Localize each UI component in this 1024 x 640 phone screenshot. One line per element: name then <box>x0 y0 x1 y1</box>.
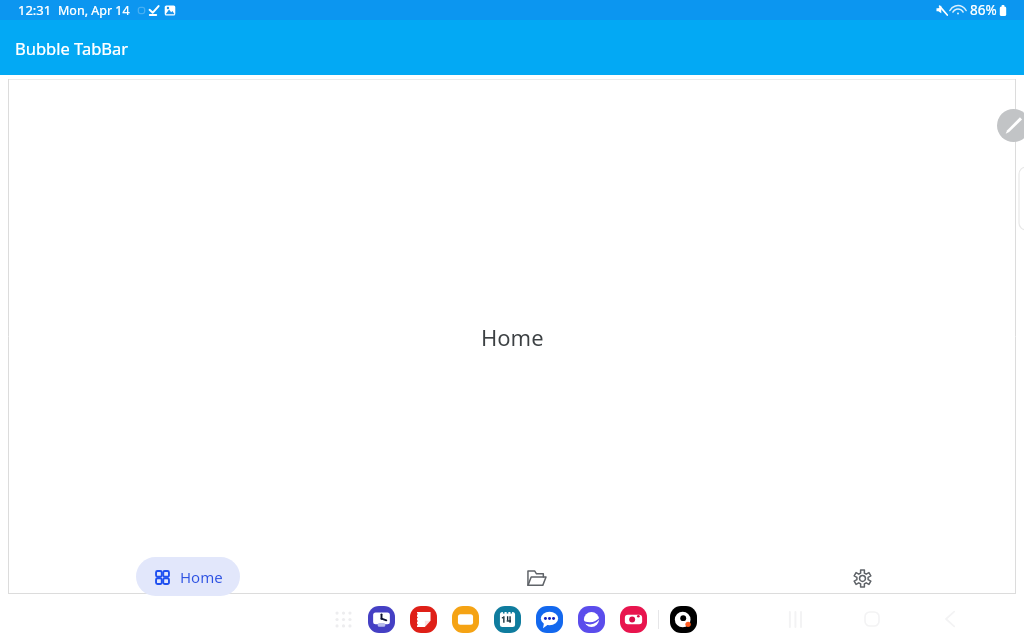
button[interactable]: Internet <box>578 606 605 633</box>
button[interactable]: Camera <box>620 606 647 633</box>
button[interactable]: Clock <box>368 606 395 633</box>
button[interactable]: All apps <box>330 606 356 632</box>
button[interactable]: Recorder <box>670 606 697 633</box>
staticText: Bubble TabBar <box>15 37 129 59</box>
button[interactable]: Calendar <box>494 606 521 633</box>
button[interactable]: Recents <box>782 606 808 632</box>
button[interactable]: Home <box>859 606 885 632</box>
button[interactable]: Home <box>136 557 240 596</box>
staticText: Home <box>180 567 223 587</box>
button[interactable]: Files <box>516 558 556 598</box>
button[interactable]: Edit <box>997 109 1024 142</box>
staticText: Home <box>481 322 544 352</box>
staticText: Mon, Apr 14 <box>58 2 130 19</box>
button[interactable]: Settings <box>842 558 882 598</box>
button[interactable]: Notes <box>410 606 437 633</box>
button[interactable]: Messages <box>536 606 563 633</box>
staticText: 86% <box>970 1 997 19</box>
button[interactable]: My Files <box>452 606 479 633</box>
staticText: 12:31 <box>18 1 52 19</box>
